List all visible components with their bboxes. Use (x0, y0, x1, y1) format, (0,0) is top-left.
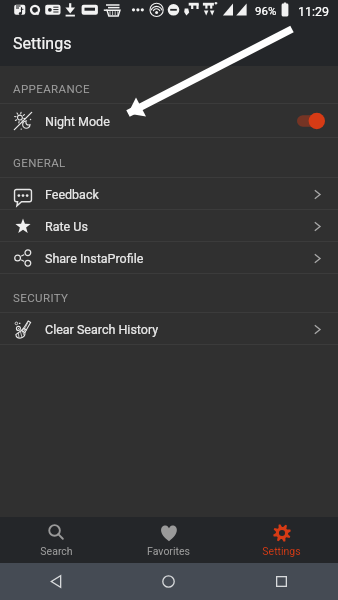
other: Back (50, 575, 63, 588)
button[interactable]: Share InstaProfile (0, 242, 338, 274)
button[interactable]: Feedback (0, 178, 338, 210)
staticText: Favorites (147, 545, 190, 557)
button[interactable]: Rate Us (0, 210, 338, 242)
other: Home (162, 575, 175, 588)
staticText: 11:29 (298, 4, 330, 19)
staticText: Settings (13, 34, 72, 53)
staticText: GENERAL (13, 156, 66, 169)
other: Recents (276, 576, 287, 587)
staticText: APPEARANCE (13, 82, 90, 95)
button[interactable]: Clear Search History (0, 313, 338, 345)
button[interactable]: Night Mode (0, 104, 338, 138)
staticText: Settings (262, 545, 301, 557)
button[interactable]: Search (0, 517, 112, 563)
button[interactable]: Favorites (112, 517, 225, 563)
staticText: 96% (255, 4, 277, 17)
staticText: Share InstaProfile (45, 251, 144, 266)
staticText: Search (40, 545, 73, 557)
staticText: SECURITY (13, 291, 69, 304)
button[interactable]: Settings (225, 517, 338, 563)
staticText: Feedback (45, 187, 99, 202)
staticText: Clear Search History (45, 322, 159, 337)
staticText: Night Mode (45, 114, 110, 129)
staticText: Rate Us (45, 219, 88, 234)
